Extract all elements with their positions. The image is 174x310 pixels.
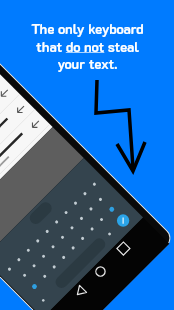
staticText: The only keyboard that do not steal your… <box>31 20 144 72</box>
